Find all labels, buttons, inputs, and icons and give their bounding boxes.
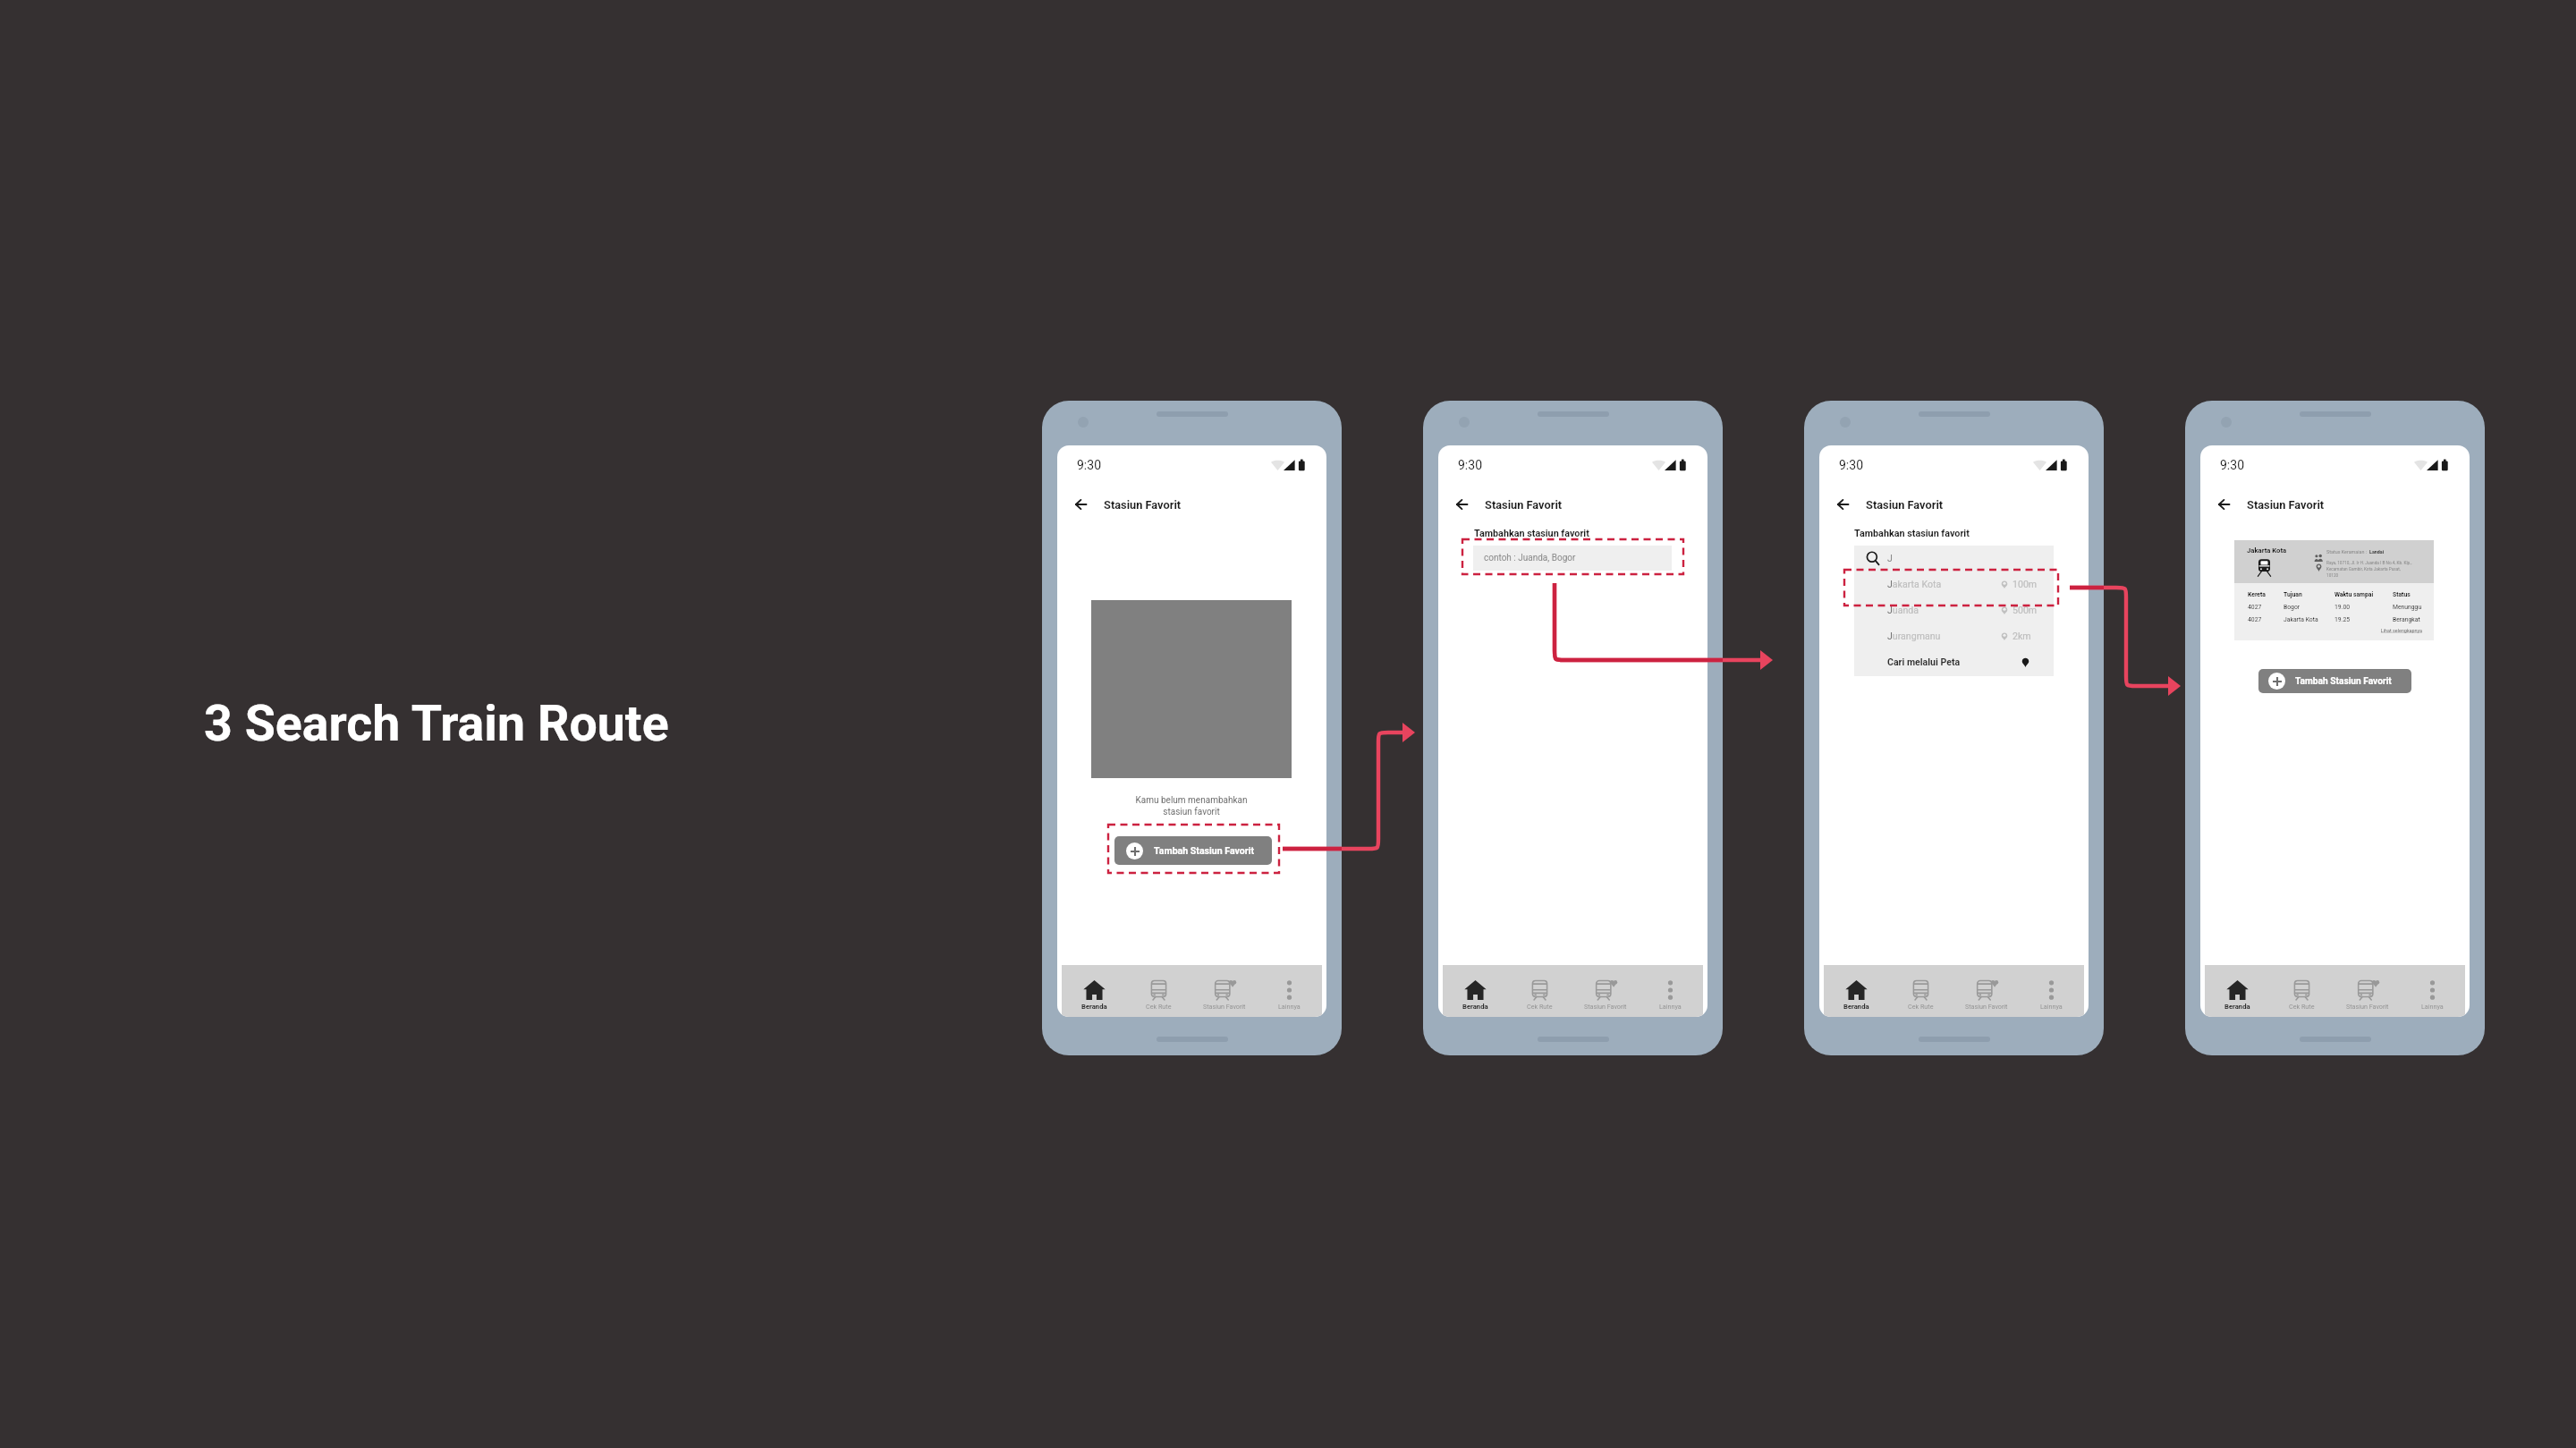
- button[interactable]: Tambah Stasiun Favorit: [1114, 836, 1272, 865]
- button[interactable]: Back: [1451, 494, 1472, 515]
- button[interactable]: Beranda: [2205, 965, 2269, 1017]
- button[interactable]: Stasiun Favorit: [2334, 965, 2400, 1017]
- staticText: Cek Rute: [1908, 1003, 1934, 1010]
- staticText: Tambahkan stasiun favorit: [1474, 528, 1589, 539]
- button[interactable]: Stasiun Favorit: [1191, 965, 1257, 1017]
- staticText: 19.25: [2334, 616, 2351, 623]
- staticText: 19.00: [2334, 604, 2351, 611]
- staticText: Jakarta Kota: [1887, 579, 1942, 589]
- button[interactable]: Back: [2213, 494, 2234, 515]
- staticText: Jakarta Kota: [2284, 616, 2318, 623]
- button[interactable]: Lainnya: [1257, 965, 1322, 1017]
- staticText: Stasiun Favorit: [1584, 1003, 1627, 1010]
- button[interactable]: Cek Rute: [2269, 965, 2334, 1017]
- staticText: Stasiun Favorit: [1104, 498, 1182, 512]
- staticText: Jurangmanu: [1887, 631, 1941, 641]
- staticText: Stasiun Favorit: [1203, 1003, 1246, 1010]
- staticText: 500m: [2012, 605, 2038, 615]
- staticText: Stasiun Favorit: [1965, 1003, 2008, 1010]
- staticText: Beranda: [1462, 1003, 1488, 1011]
- button[interactable]: Back: [1070, 494, 1091, 515]
- button[interactable]: Back: [1832, 494, 1853, 515]
- staticText: 2km: [2012, 631, 2031, 641]
- button[interactable]: Tambah Stasiun Favorit: [2258, 669, 2411, 693]
- button[interactable]: Cek Rute: [1126, 965, 1191, 1017]
- staticText: Cek Rute: [1527, 1003, 1553, 1010]
- staticText: Tujuan: [2284, 591, 2302, 598]
- button[interactable]: Stasiun Favorit: [1572, 965, 1638, 1017]
- staticText: Beranda: [1843, 1003, 1869, 1011]
- staticText: Cari melalui Peta: [1887, 656, 1961, 667]
- button[interactable]: Jurangmanu: [1854, 623, 2054, 649]
- staticText: Bogor: [2284, 604, 2301, 611]
- button[interactable]: Lainnya: [2400, 965, 2465, 1017]
- button[interactable]: Cek Rute: [1507, 965, 1572, 1017]
- button[interactable]: Lainnya: [2019, 965, 2084, 1017]
- staticText: 4027: [2248, 616, 2262, 623]
- staticText: Tambahkan stasiun favorit: [1854, 528, 1970, 539]
- staticText: Stasiun Favorit: [2247, 498, 2325, 512]
- staticText: Lainnya: [1659, 1003, 1682, 1010]
- button[interactable]: Search station field: [1854, 546, 2054, 572]
- button[interactable]: Stasiun Favorit: [1953, 965, 2019, 1017]
- staticText: 4027: [2248, 604, 2262, 611]
- staticText: Jakarta Kota: [2247, 546, 2287, 555]
- staticText: 3 Search Train Route: [204, 695, 669, 753]
- staticText: Cek Rute: [1146, 1003, 1172, 1010]
- staticText: contoh : Juanda, Bogor: [1484, 553, 1576, 563]
- button[interactable]: Lainnya: [1638, 965, 1703, 1017]
- staticText: Beranda: [1081, 1003, 1107, 1011]
- staticText: Stasiun Favorit: [1485, 498, 1563, 512]
- staticText: J: [1887, 553, 1893, 563]
- staticText: Lainnya: [2421, 1003, 2444, 1010]
- staticText: 9:30: [1077, 458, 1101, 472]
- staticText: Status Keramaian :: [2326, 549, 2368, 555]
- staticText: Cek Rute: [2289, 1003, 2315, 1010]
- button[interactable]: Beranda: [1824, 965, 1888, 1017]
- staticText: Raya, 10710, Jl. Ir H. Juanda I B No.4, …: [2326, 561, 2412, 578]
- button[interactable]: Cari melalui Peta: [1854, 649, 2054, 675]
- staticText: Tambah Stasiun Favorit: [1154, 845, 1255, 856]
- button[interactable]: Juanda: [1854, 597, 2054, 623]
- staticText: Tambah Stasiun Favorit: [2295, 676, 2392, 687]
- staticText: Juanda: [1887, 605, 1919, 615]
- staticText: Berangkat: [2393, 616, 2420, 623]
- staticText: Landai: [2369, 549, 2385, 555]
- button[interactable]: Search station field: [1473, 546, 1672, 571]
- staticText: Lainnya: [2040, 1003, 2063, 1010]
- staticText: Kereta: [2248, 591, 2266, 598]
- staticText: Beranda: [2224, 1003, 2250, 1011]
- button[interactable]: Cek Rute: [1888, 965, 1953, 1017]
- staticText: 9:30: [1458, 458, 1482, 472]
- staticText: Waktu sampai: [2334, 591, 2374, 598]
- staticText: Lainnya: [1278, 1003, 1301, 1010]
- staticText: Stasiun Favorit: [2346, 1003, 2389, 1010]
- staticText: 100m: [2012, 579, 2038, 589]
- button[interactable]: Beranda: [1443, 965, 1507, 1017]
- staticText: Stasiun Favorit: [1866, 498, 1944, 512]
- button[interactable]: Jakarta Kota: [1854, 572, 2054, 597]
- button[interactable]: Beranda: [1062, 965, 1126, 1017]
- staticText: Kamu belum menambahkan stasiun favorit: [1091, 795, 1292, 817]
- button[interactable]: Lihat selengkapnya: [2234, 628, 2434, 636]
- staticText: Status: [2393, 591, 2411, 598]
- staticText: Menunggu: [2393, 604, 2422, 611]
- staticText: 9:30: [1839, 458, 1863, 472]
- staticText: 9:30: [2220, 458, 2244, 472]
